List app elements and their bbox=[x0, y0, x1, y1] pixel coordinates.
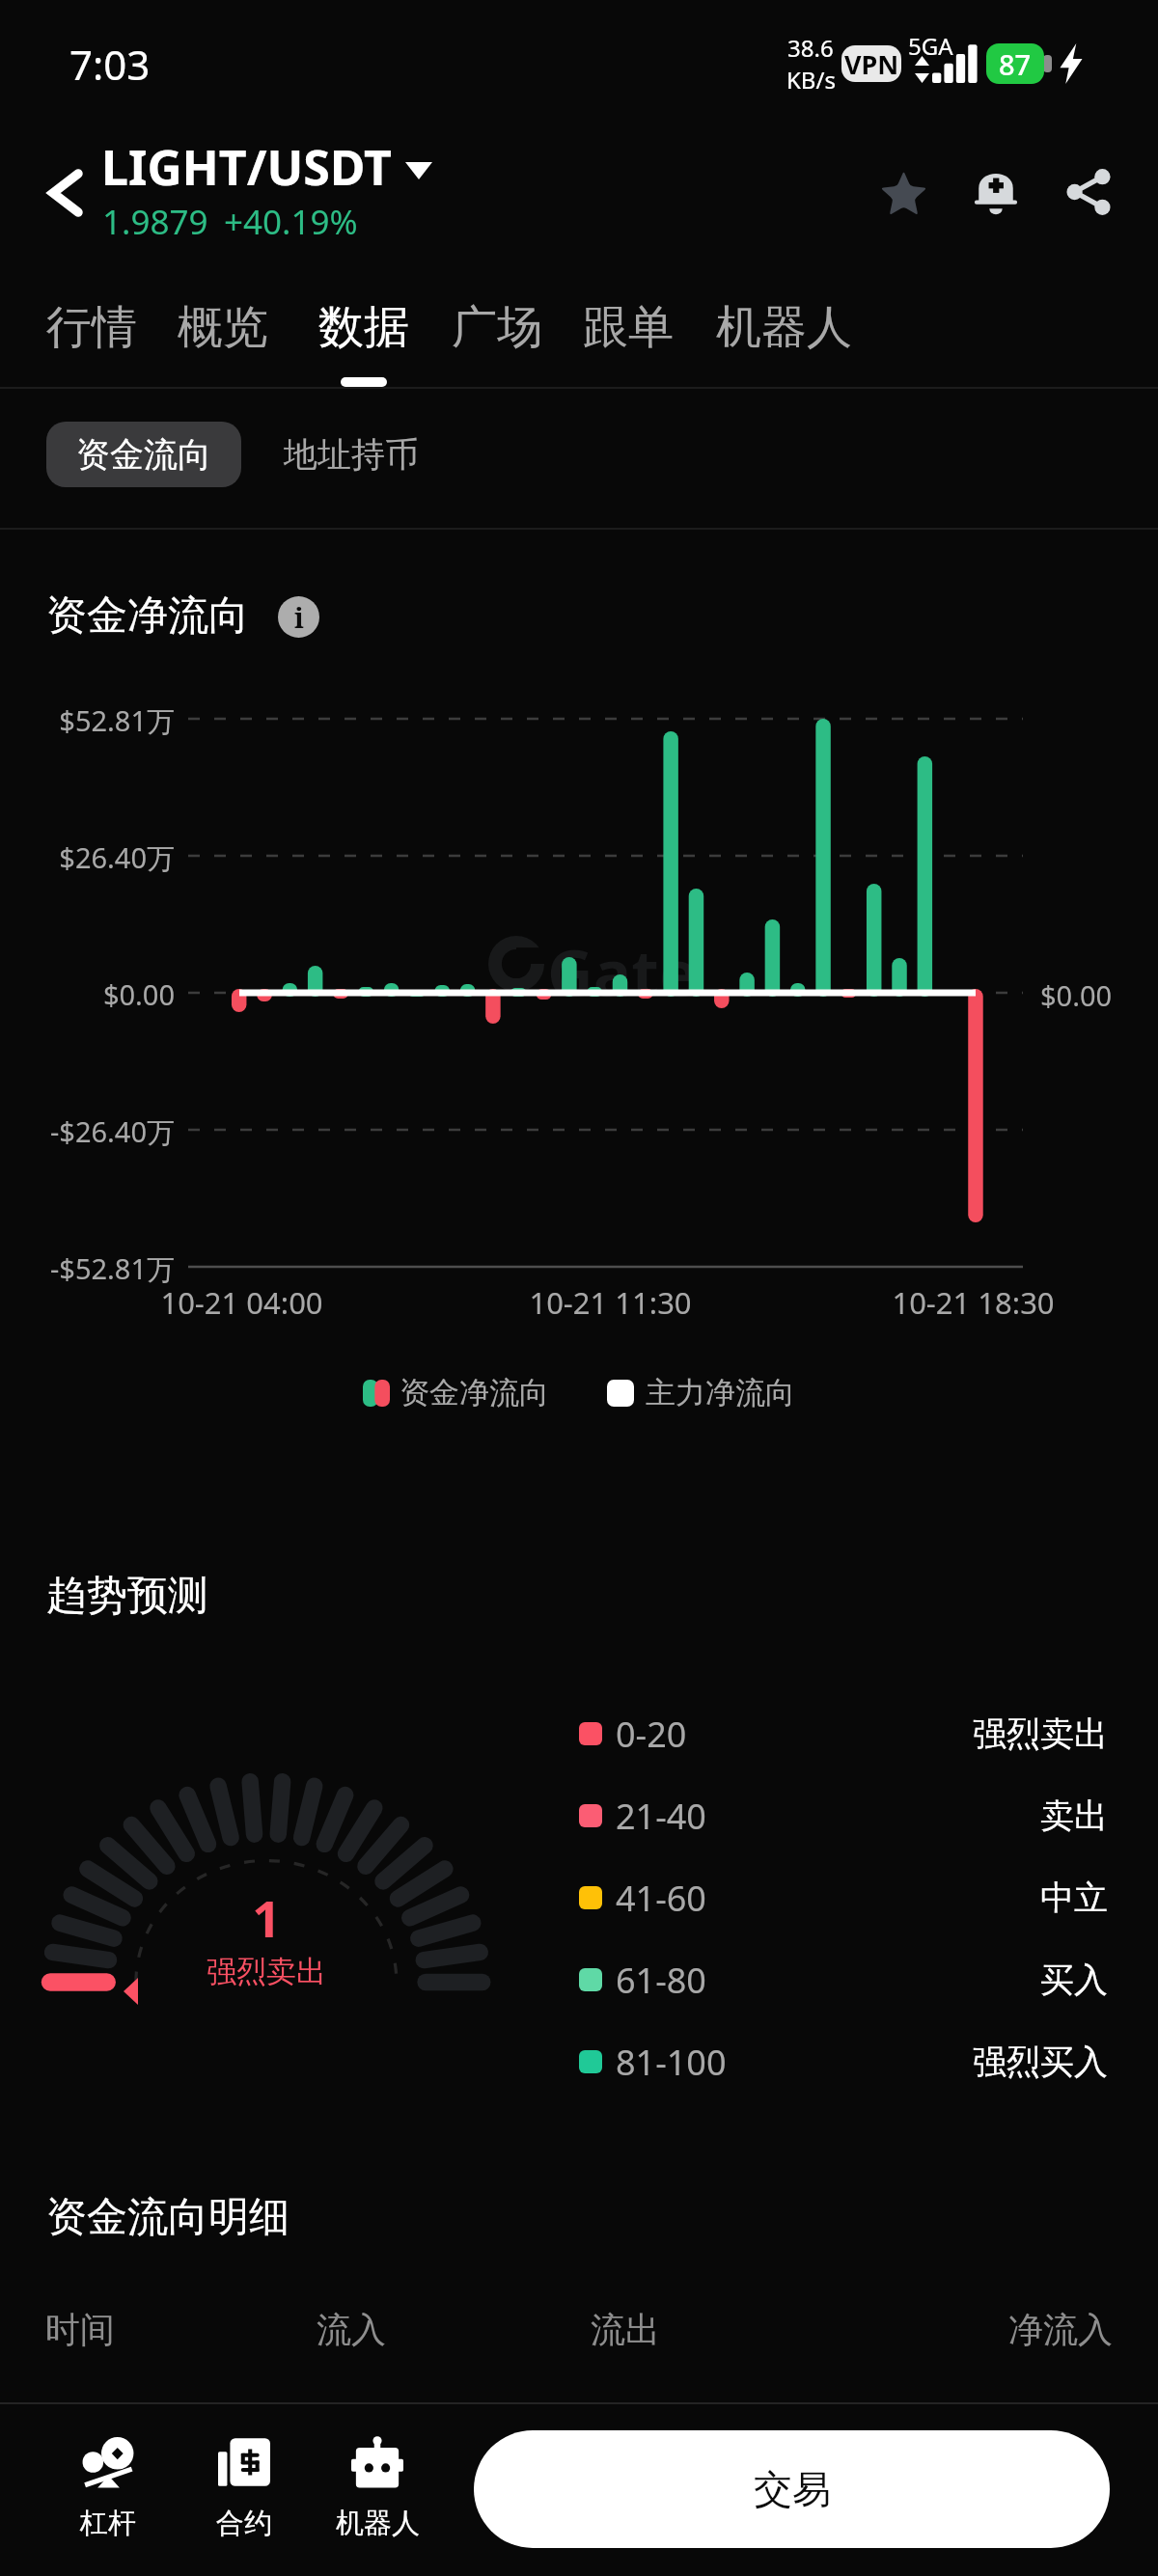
staticText: 5GA bbox=[908, 30, 953, 62]
button[interactable]: Share bbox=[1042, 146, 1135, 238]
staticText: KB/s bbox=[786, 64, 836, 96]
staticText: +40.19% bbox=[224, 199, 358, 245]
staticText: 1 bbox=[252, 1883, 281, 1952]
staticText: 数据 bbox=[318, 299, 409, 356]
staticText: 行情 bbox=[46, 299, 137, 356]
staticText: 10-21 11:30 bbox=[529, 1282, 692, 1323]
staticText: 87 bbox=[999, 45, 1032, 83]
button[interactable]: 61-80 bbox=[579, 1943, 1108, 2016]
button[interactable]: 41-60 bbox=[579, 1861, 1108, 1934]
staticText: 概览 bbox=[178, 299, 268, 356]
staticText: 流出 bbox=[591, 2308, 660, 2351]
staticText: 21-40 bbox=[616, 1793, 706, 1840]
staticText: 强烈买入 bbox=[973, 2041, 1108, 2083]
staticText: LIGHT/USDT bbox=[101, 134, 392, 200]
staticText: -$26.40万 bbox=[49, 1112, 175, 1151]
button[interactable]: 机器人 bbox=[699, 286, 869, 392]
staticText: 趋势预测 bbox=[46, 1571, 208, 1622]
staticText: $26.40万 bbox=[59, 838, 175, 877]
staticText: 41-60 bbox=[616, 1875, 706, 1922]
button[interactable]: 地址持币 bbox=[268, 422, 434, 487]
button[interactable]: Price alert bbox=[950, 145, 1042, 237]
button[interactable]: 跟单 bbox=[565, 286, 691, 392]
button[interactable]: 行情 bbox=[29, 286, 154, 392]
staticText: 交易 bbox=[754, 2465, 831, 2513]
staticText: 强烈卖出 bbox=[973, 1713, 1108, 1755]
button[interactable]: 81-100 bbox=[579, 2025, 1108, 2098]
staticText: 1.9879 bbox=[102, 199, 208, 245]
staticText: 资金流向 bbox=[76, 433, 211, 476]
staticText: 7:03 bbox=[69, 37, 151, 92]
staticText: 61-80 bbox=[616, 1957, 706, 2004]
button[interactable]: 合约 bbox=[177, 2417, 312, 2552]
staticText: 时间 bbox=[45, 2308, 115, 2351]
staticText: 跟单 bbox=[583, 299, 674, 356]
staticText: Gate bbox=[547, 928, 698, 1015]
staticText: VPN bbox=[844, 46, 899, 82]
button[interactable]: 广场 bbox=[434, 286, 560, 392]
button[interactable]: Info bbox=[278, 596, 319, 638]
staticText: 10-21 04:00 bbox=[160, 1282, 323, 1323]
staticText: 81-100 bbox=[616, 2039, 727, 2086]
staticText: 机器人 bbox=[716, 299, 852, 356]
staticText: 38.6 bbox=[787, 32, 834, 64]
staticText: i bbox=[294, 599, 304, 636]
staticText: 资金净流向 bbox=[46, 590, 249, 642]
button[interactable]: 资金流向 bbox=[46, 422, 241, 487]
button[interactable]: 交易 bbox=[474, 2430, 1110, 2548]
staticText: 中立 bbox=[1040, 1877, 1108, 1919]
staticText: 合约 bbox=[216, 2506, 272, 2541]
staticText: 卖出 bbox=[1040, 1795, 1108, 1837]
staticText: 流入 bbox=[317, 2308, 386, 2351]
button[interactable]: 概览 bbox=[160, 286, 286, 392]
button[interactable]: Back bbox=[19, 145, 112, 241]
button[interactable]: 机器人 bbox=[310, 2417, 445, 2552]
staticText: 资金净流向 bbox=[400, 1374, 549, 1411]
staticText: 机器人 bbox=[336, 2506, 420, 2541]
button[interactable]: 数据 bbox=[301, 286, 427, 392]
staticText: 0-20 bbox=[616, 1711, 687, 1758]
staticText: $0.00 bbox=[1040, 976, 1113, 1014]
staticText: 净流入 bbox=[1008, 2308, 1113, 2351]
staticText: -$52.81万 bbox=[49, 1249, 175, 1288]
staticText: 10-21 18:30 bbox=[892, 1282, 1055, 1323]
staticText: 地址持币 bbox=[284, 433, 419, 476]
staticText: 广场 bbox=[452, 299, 542, 356]
staticText: 杠杆 bbox=[80, 2506, 136, 2541]
staticText: 强烈卖出 bbox=[207, 1953, 326, 1990]
button[interactable]: 21-40 bbox=[579, 1779, 1108, 1852]
staticText: 资金流向明细 bbox=[46, 2192, 289, 2243]
button[interactable]: Favourite bbox=[857, 147, 950, 239]
staticText: $0.00 bbox=[102, 975, 175, 1013]
button[interactable]: 0-20 bbox=[579, 1697, 1108, 1770]
button[interactable]: 杠杆 bbox=[41, 2417, 176, 2552]
staticText: 买入 bbox=[1040, 1959, 1108, 2001]
staticText: 主力净流向 bbox=[646, 1374, 795, 1411]
staticText: $52.81万 bbox=[59, 701, 175, 740]
